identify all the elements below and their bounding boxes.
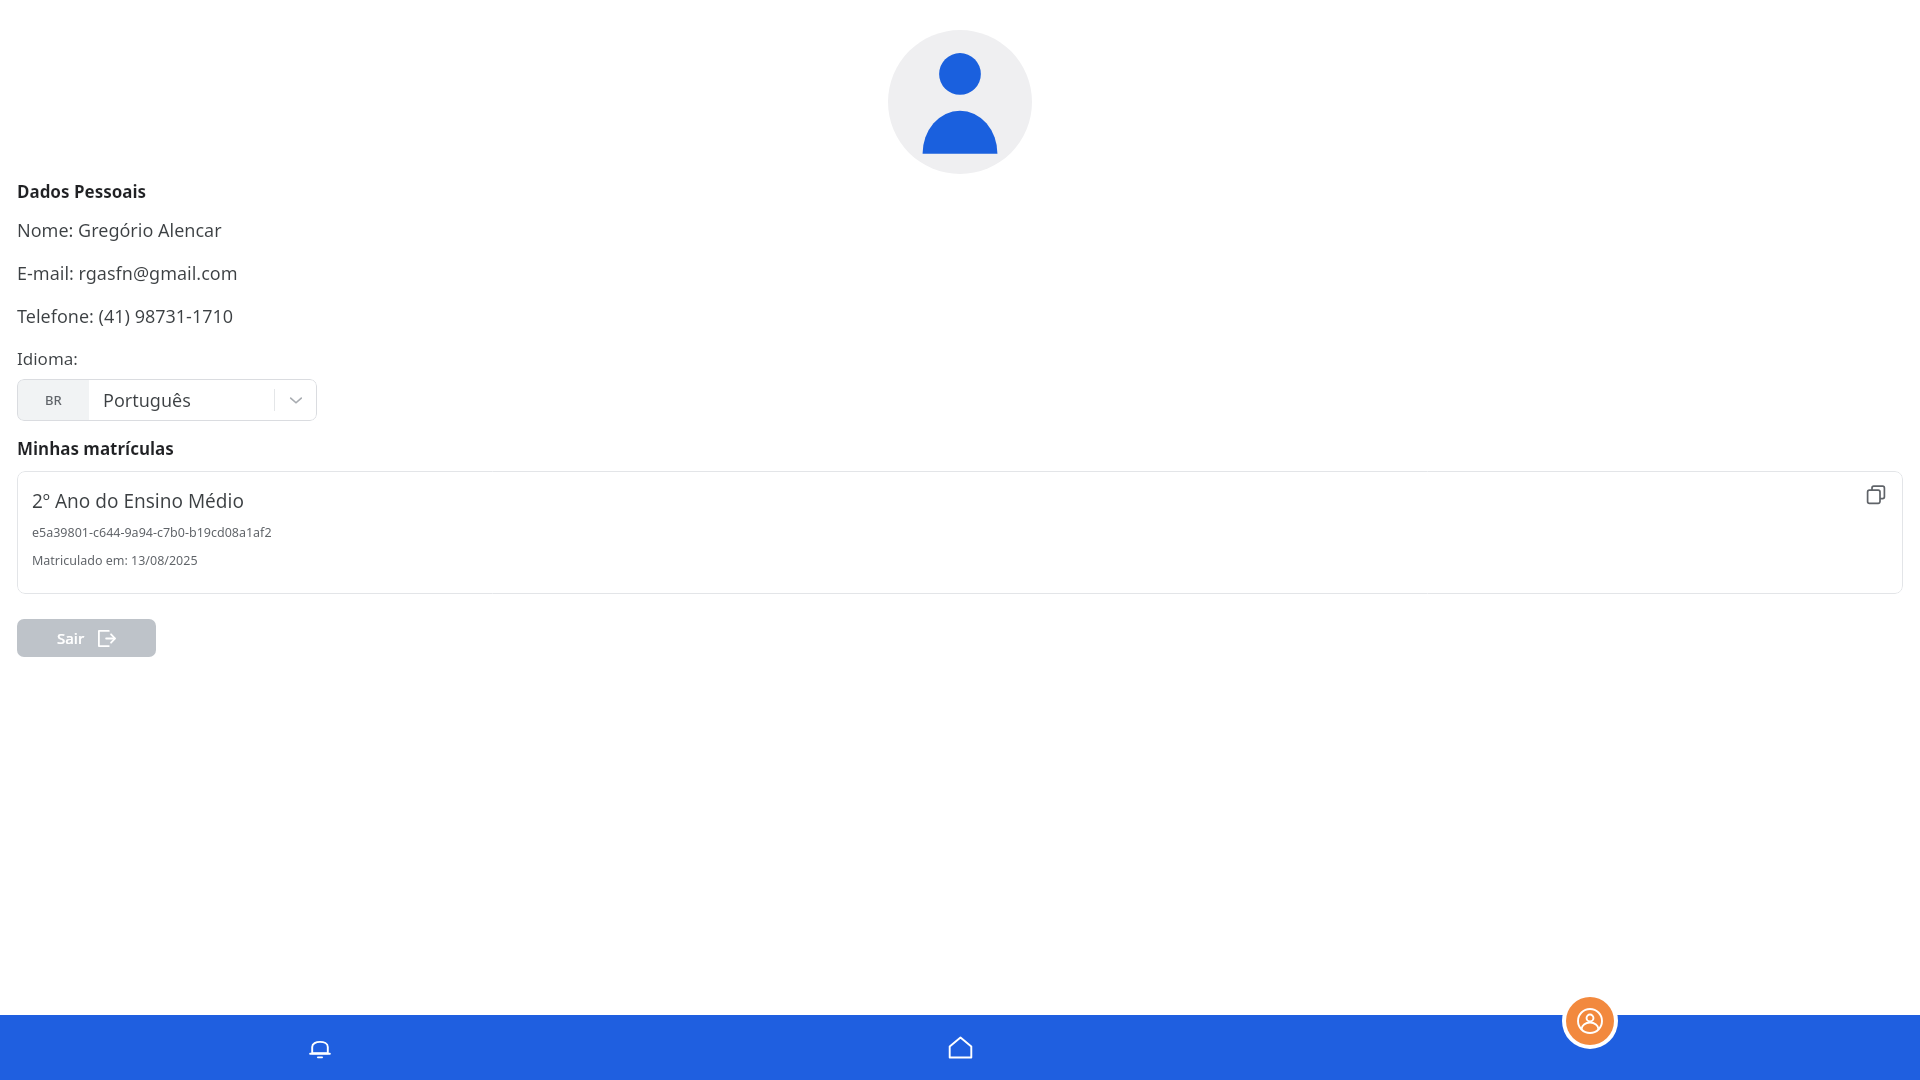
button[interactable]: Perfil xyxy=(1562,993,1618,1049)
button[interactable]: Foto do perfil xyxy=(888,30,1032,174)
staticText: Dados Pessoais xyxy=(17,180,147,203)
staticText: Telefone: (41) 98731-1710 xyxy=(17,304,234,329)
button[interactable]: Início xyxy=(640,1015,1280,1080)
button[interactable]: Sair xyxy=(17,619,156,657)
staticText: Idioma: xyxy=(17,347,78,370)
staticText: Minhas matrículas xyxy=(17,437,174,460)
button[interactable]: Notificações xyxy=(0,1015,640,1080)
staticText: Matriculado em: 13/08/2025 xyxy=(32,552,198,569)
staticText: e5a39801-c644-9a94-c7b0-b19cd08a1af2 xyxy=(32,524,272,541)
staticText: 2º Ano do Ensino Médio xyxy=(32,488,244,514)
button[interactable]: Copiar código xyxy=(1859,478,1893,512)
staticText: Português xyxy=(103,388,191,413)
staticText: Sair xyxy=(57,628,85,648)
button[interactable]: 2º Ano do Ensino Médio xyxy=(17,471,1903,594)
staticText: BR xyxy=(45,391,62,409)
button[interactable]: BR xyxy=(17,379,317,421)
staticText: Nome: Gregório Alencar xyxy=(17,218,222,243)
staticText: E-mail: rgasfn@gmail.com xyxy=(17,261,238,286)
